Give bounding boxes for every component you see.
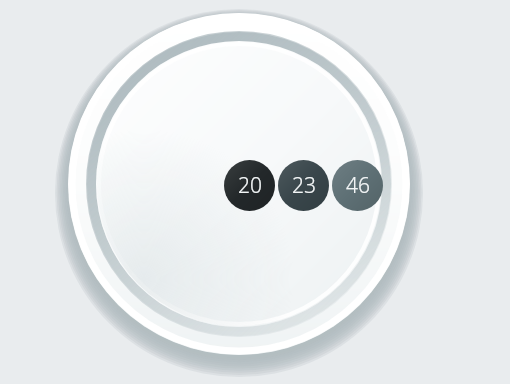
button[interactable]: 46 [332, 160, 383, 211]
staticText: 23 [292, 171, 316, 200]
button[interactable]: 23 [278, 160, 329, 211]
staticText: 46 [346, 171, 370, 200]
staticText: 20 [238, 171, 262, 200]
button[interactable]: Current time 20:23:46 [224, 160, 383, 211]
button[interactable]: 20 [224, 160, 275, 211]
